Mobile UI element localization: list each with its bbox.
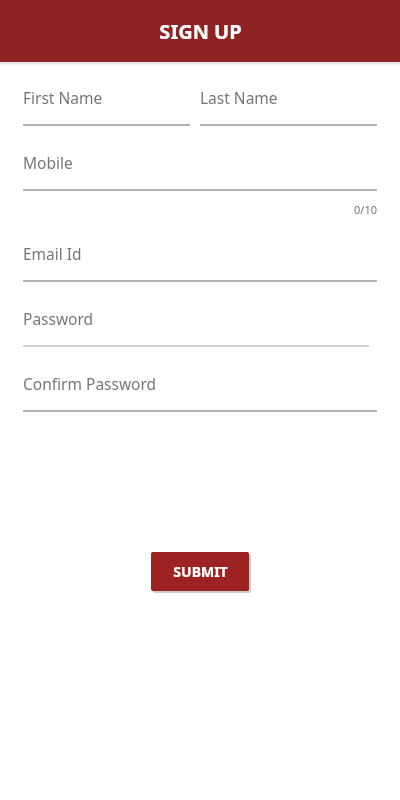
- button[interactable]: Last Name: [200, 87, 278, 108]
- button[interactable]: Confirm Password: [23, 373, 157, 394]
- button[interactable]: Password: [23, 308, 94, 329]
- button[interactable]: First Name: [23, 87, 103, 108]
- button[interactable]: Submit: [151, 552, 249, 591]
- button[interactable]: Email Id: [23, 243, 82, 264]
- staticText: SIGN UP: [159, 18, 242, 45]
- staticText: 0/10: [354, 202, 377, 217]
- button[interactable]: Mobile: [23, 152, 73, 173]
- staticText: SUBMIT: [173, 562, 228, 581]
